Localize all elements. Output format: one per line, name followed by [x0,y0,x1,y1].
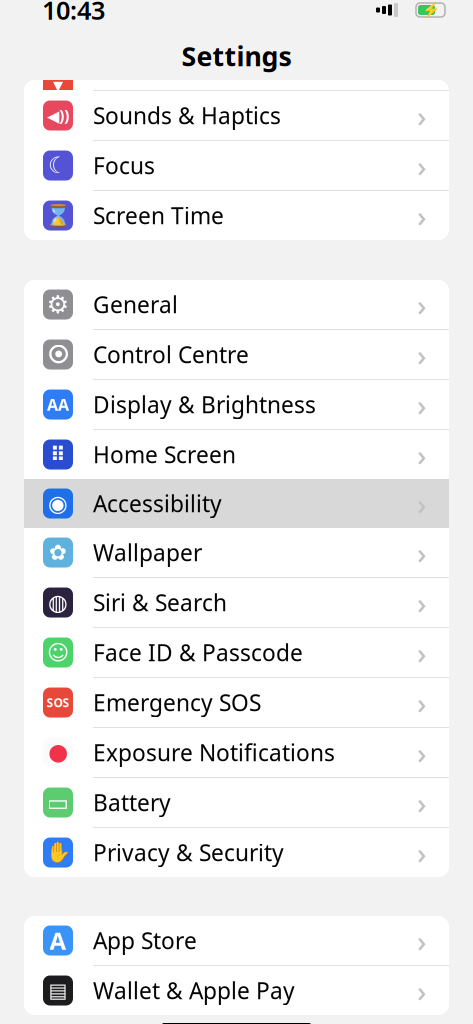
button[interactable]: ☾ [24,141,449,190]
staticText: ⦿ [47,344,68,365]
button[interactable]: ☺ [24,628,449,677]
staticText: 10:43 [42,0,105,27]
button[interactable]: ▤ [24,966,449,1015]
staticText: ⌛ [44,203,71,228]
button[interactable]: ◀)) [24,91,449,140]
staticText: Focus [93,150,155,180]
staticText: ▤ [48,979,67,1002]
staticText: Face ID & Passcode [93,637,303,667]
button[interactable]: ⠿ [24,430,449,479]
staticText: Accessibility [93,488,222,518]
staticText: Wallet & Apple Pay [93,975,295,1005]
staticText: ☺ [47,640,69,665]
staticText: Privacy & Security [93,837,284,867]
staticText: ⬤ [48,743,67,762]
staticText: ▭ [46,789,69,816]
button[interactable]: ⚙ [24,280,449,329]
button[interactable]: ✋ [24,828,449,877]
button[interactable]: ✿ [24,528,449,577]
staticText: ▾ [53,74,63,96]
staticText: A [49,925,66,956]
staticText: Battery [93,787,171,817]
button[interactable]: SOS [24,678,449,727]
staticText: ✋ [45,841,70,864]
staticText: Display & Brightness [93,389,316,419]
staticText: › [417,196,427,235]
staticText: › [417,335,427,374]
staticText: ⠿ [50,443,66,466]
staticText: › [417,285,427,324]
staticText: Exposure Notifications [93,737,335,767]
staticText: › [417,533,427,572]
staticText: App Store [93,925,197,955]
staticText: ☾ [48,153,68,178]
staticText: ⚙ [46,290,69,319]
button[interactable]: ⌛ [24,191,449,240]
staticText: Sounds & Haptics [93,100,281,130]
button[interactable]: ◉ [24,479,449,528]
staticText: ◉ [48,491,68,516]
staticText: Control Centre [93,339,249,369]
staticText: ◀)) [47,105,69,126]
staticText: ✿ [49,540,67,565]
button[interactable]: ◍ [24,578,449,627]
staticText: › [417,146,427,185]
staticText: › [417,733,427,772]
staticText: Home Screen [93,439,236,469]
staticText: › [417,385,427,424]
staticText: Emergency SOS [93,687,261,717]
staticText: › [417,921,427,960]
staticText: Screen Time [93,200,224,230]
button[interactable]: ▭ [24,778,449,827]
staticText: SOS [46,694,69,710]
staticText: ◍ [48,590,68,615]
staticText: › [417,633,427,672]
staticText: Siri & Search [93,587,227,617]
staticText: Wallpaper [93,537,202,567]
staticText: Settings [181,38,291,74]
button[interactable]: ⦿ [24,330,449,379]
staticText: General [93,289,178,319]
staticText: › [417,96,427,135]
staticText: ⚡ [421,2,439,18]
staticText: › [417,833,427,872]
button[interactable]: ⬤ [24,728,449,777]
staticText: AA [47,394,69,415]
staticText: › [417,783,427,822]
staticText: › [417,971,427,1010]
staticText: › [417,435,427,474]
button[interactable]: A [24,916,449,965]
staticText: › [417,583,427,622]
staticText: › [417,484,427,523]
staticText: › [417,683,427,722]
button[interactable]: AA [24,380,449,429]
